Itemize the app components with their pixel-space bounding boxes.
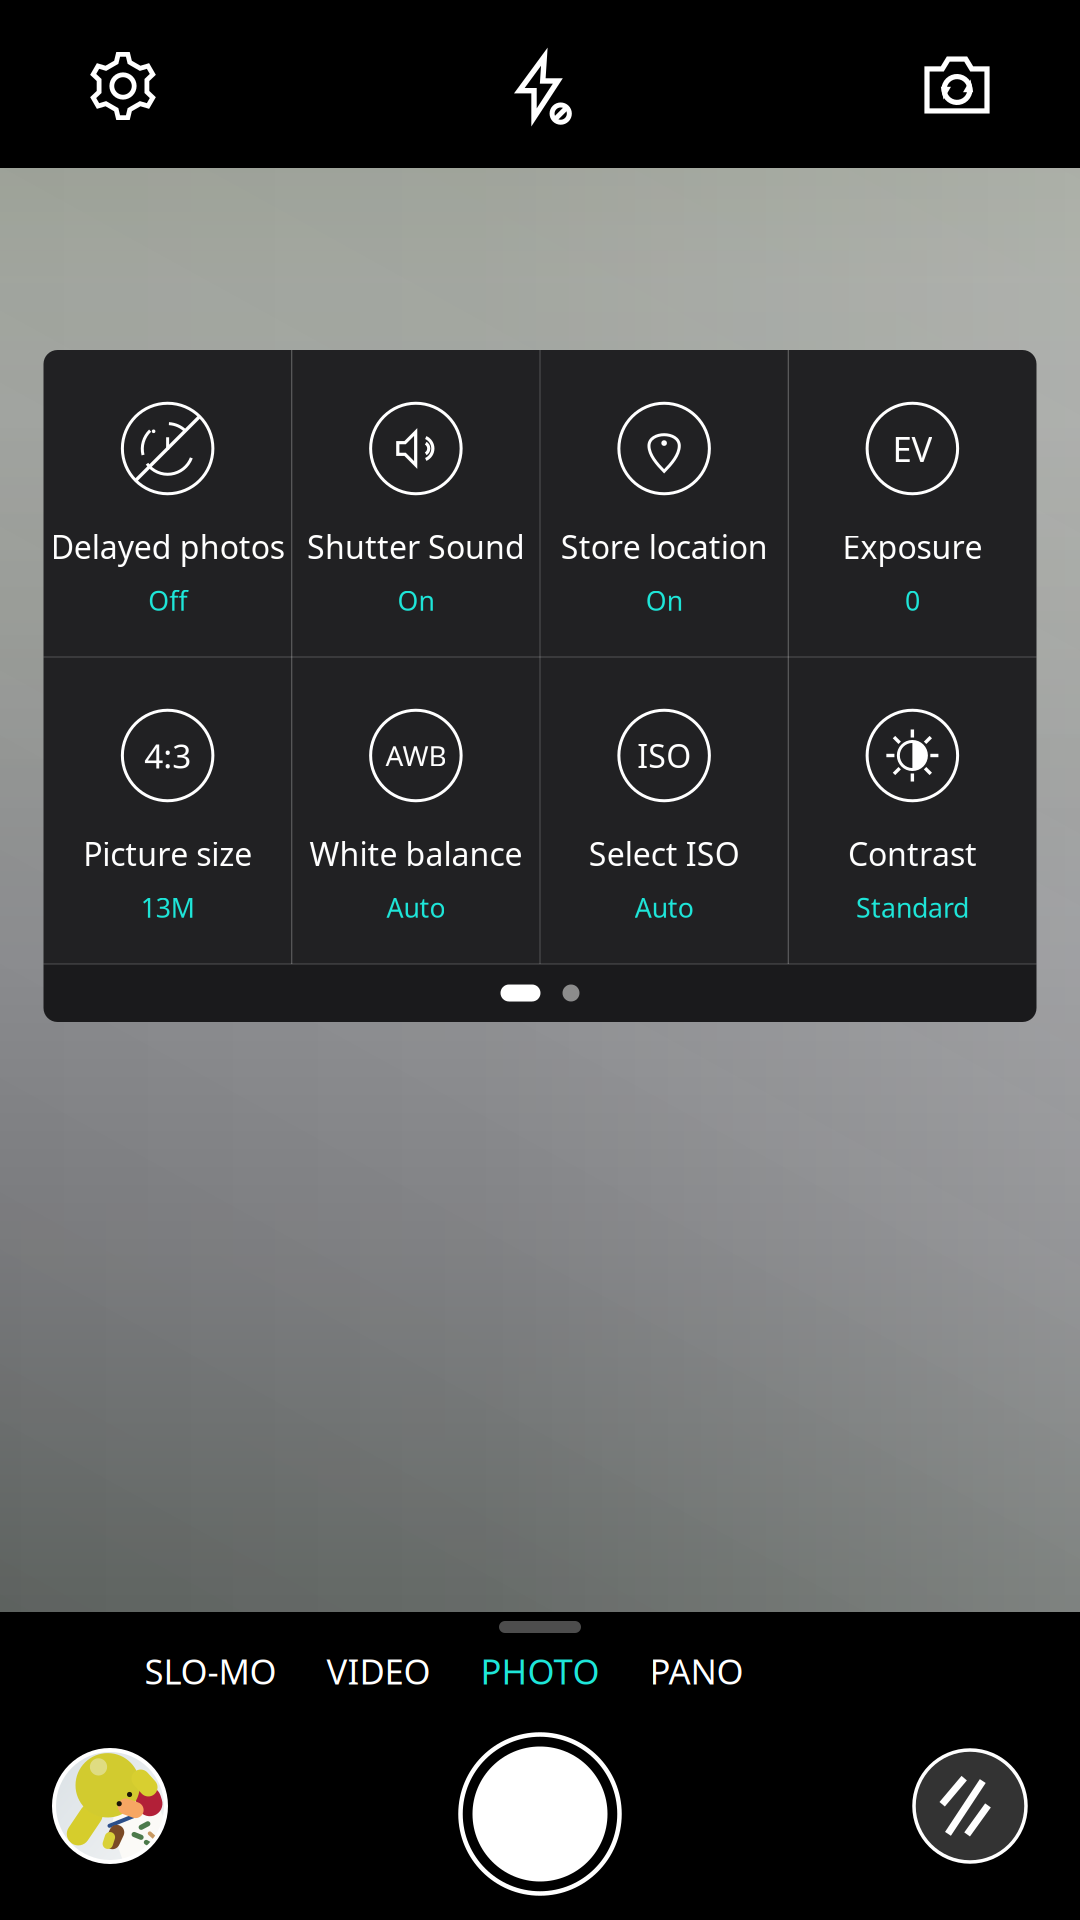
staticText: On <box>646 583 683 618</box>
button[interactable]: Shutter Sound <box>292 350 540 657</box>
staticText: Auto <box>635 890 694 925</box>
staticText: EV <box>892 425 932 471</box>
staticText: 4:3 <box>144 733 191 778</box>
staticText: On <box>397 583 434 618</box>
button[interactable]: Delayed photos <box>43 350 292 657</box>
staticText: Standard <box>856 890 969 925</box>
button[interactable]: Contrast <box>788 657 1036 964</box>
staticText: VIDEO <box>326 1648 430 1694</box>
staticText: White balance <box>309 832 522 875</box>
button[interactable]: Settings <box>39 0 207 168</box>
staticText: 13M <box>141 890 195 925</box>
staticText: Picture size <box>83 832 252 875</box>
staticText: Select ISO <box>589 832 740 875</box>
button[interactable]: Shutter <box>452 1718 628 1894</box>
staticText: SLO-MO <box>144 1648 276 1694</box>
button[interactable]: PANO <box>649 1648 743 1694</box>
button[interactable]: PHOTO <box>480 1648 599 1694</box>
staticText: Off <box>148 583 187 618</box>
button[interactable]: VIDEO <box>326 1648 430 1694</box>
button[interactable]: Store location <box>540 350 788 657</box>
staticText: Delayed photos <box>51 525 285 568</box>
button[interactable]: ISO <box>540 657 788 964</box>
staticText: ISO <box>637 734 691 777</box>
button[interactable]: EV <box>788 350 1036 657</box>
staticText: AWB <box>385 737 446 774</box>
button[interactable]: Flash off <box>457 0 625 168</box>
button[interactable]: AWB <box>292 657 540 964</box>
staticText: Exposure <box>842 525 982 568</box>
button[interactable]: 4:3 <box>43 657 292 964</box>
button[interactable]: SLO-MO <box>144 1648 276 1694</box>
button[interactable]: Photo library <box>54 1750 166 1862</box>
staticText: PANO <box>649 1648 743 1694</box>
staticText: Store location <box>561 525 768 568</box>
staticText: PHOTO <box>480 1648 599 1694</box>
button[interactable]: Switch camera <box>876 0 1044 168</box>
staticText: Auto <box>386 890 445 925</box>
button[interactable]: Filters <box>914 1750 1026 1862</box>
staticText: 0 <box>905 583 920 618</box>
staticText: Contrast <box>848 832 977 875</box>
staticText: Shutter Sound <box>307 525 525 568</box>
